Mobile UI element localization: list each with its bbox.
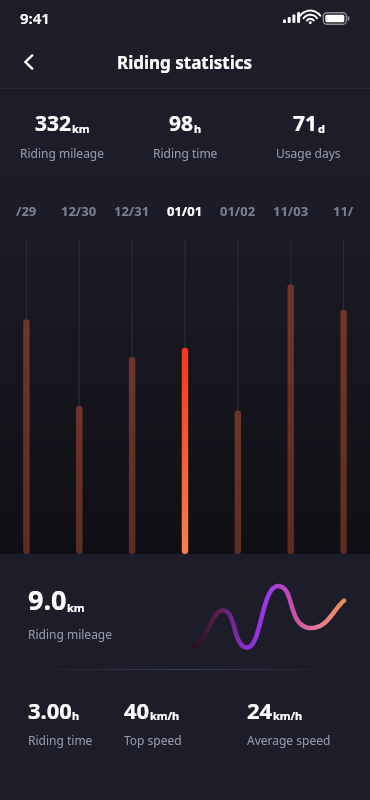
staticText: Riding mileage — [28, 626, 113, 642]
staticText: 12/30 — [61, 202, 97, 220]
staticText: 332 — [35, 109, 72, 138]
staticText: 98 — [169, 109, 194, 138]
staticText: Riding mileage — [20, 145, 105, 161]
staticText: d — [318, 121, 325, 136]
staticText: Top speed — [124, 732, 182, 748]
staticText: Riding time — [153, 145, 218, 161]
staticText: Riding statistics — [117, 51, 253, 74]
staticText: km — [67, 600, 85, 615]
staticText: Average speed — [247, 732, 331, 748]
button[interactable]: 01/02 — [211, 202, 264, 220]
staticText: 01/02 — [220, 202, 256, 220]
staticText: h — [72, 708, 80, 723]
staticText: Riding time — [28, 732, 93, 748]
staticText: 40 — [124, 695, 150, 725]
staticText: 3.00 — [28, 695, 72, 725]
staticText: 71 — [293, 109, 318, 138]
staticText: Usage days — [276, 145, 341, 161]
button[interactable]: /29 — [0, 202, 52, 220]
staticText: 9.0 — [28, 581, 67, 618]
staticText: km/h — [273, 708, 303, 723]
button[interactable]: 11/ — [317, 202, 370, 220]
staticText: /29 — [16, 202, 37, 220]
staticText: 12/31 — [114, 202, 150, 220]
staticText: 24 — [247, 695, 273, 725]
button[interactable]: Back — [9, 42, 49, 82]
button[interactable]: 01/01 — [158, 202, 211, 220]
staticText: h — [194, 121, 202, 136]
button[interactable]: 12/30 — [52, 202, 105, 220]
staticText: 01/01 — [167, 202, 203, 220]
button[interactable]: 12/31 — [105, 202, 158, 220]
button[interactable]: 11/03 — [264, 202, 317, 220]
staticText: km/h — [150, 708, 180, 723]
staticText: km — [72, 121, 90, 136]
staticText: 11/03 — [273, 202, 309, 220]
staticText: 11/ — [333, 202, 354, 220]
staticText: 9:41 — [20, 8, 50, 28]
